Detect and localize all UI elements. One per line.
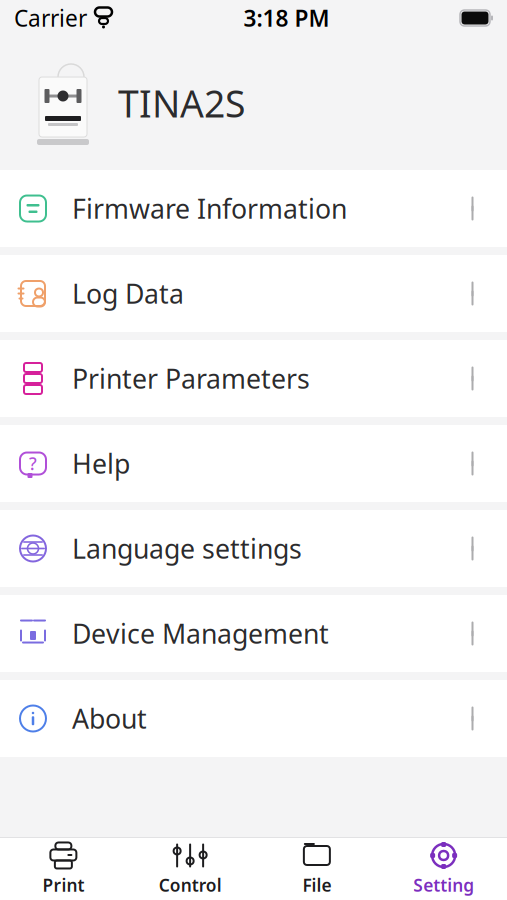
- button[interactable]: Control: [127, 838, 254, 900]
- button[interactable]: ?: [0, 425, 507, 502]
- staticText: Log Data: [72, 276, 184, 311]
- button[interactable]: Printer Parameters: [0, 340, 507, 417]
- button[interactable]: Language settings: [0, 510, 507, 587]
- staticText: Help: [72, 446, 130, 481]
- staticText: File: [302, 873, 331, 896]
- staticText: Device Management: [72, 616, 329, 651]
- button[interactable]: File: [253, 838, 380, 900]
- staticText: ?: [29, 452, 37, 475]
- staticText: 3:18 PM: [243, 3, 329, 33]
- button[interactable]: Firmware Information: [0, 170, 507, 247]
- button[interactable]: About: [0, 680, 507, 757]
- staticText: Carrier: [14, 3, 87, 33]
- staticText: Printer Parameters: [72, 361, 310, 396]
- button[interactable]: Print: [0, 838, 127, 900]
- staticText: Control: [159, 873, 222, 896]
- staticText: Print: [42, 873, 84, 896]
- button[interactable]: Device Management: [0, 595, 507, 672]
- staticText: TINA2S: [118, 78, 245, 128]
- staticText: Firmware Information: [72, 191, 347, 226]
- staticText: About: [72, 701, 147, 736]
- staticText: Language settings: [72, 531, 302, 566]
- button[interactable]: Log Data: [0, 255, 507, 332]
- staticText: Setting: [413, 873, 474, 896]
- button[interactable]: Setting: [380, 838, 507, 900]
